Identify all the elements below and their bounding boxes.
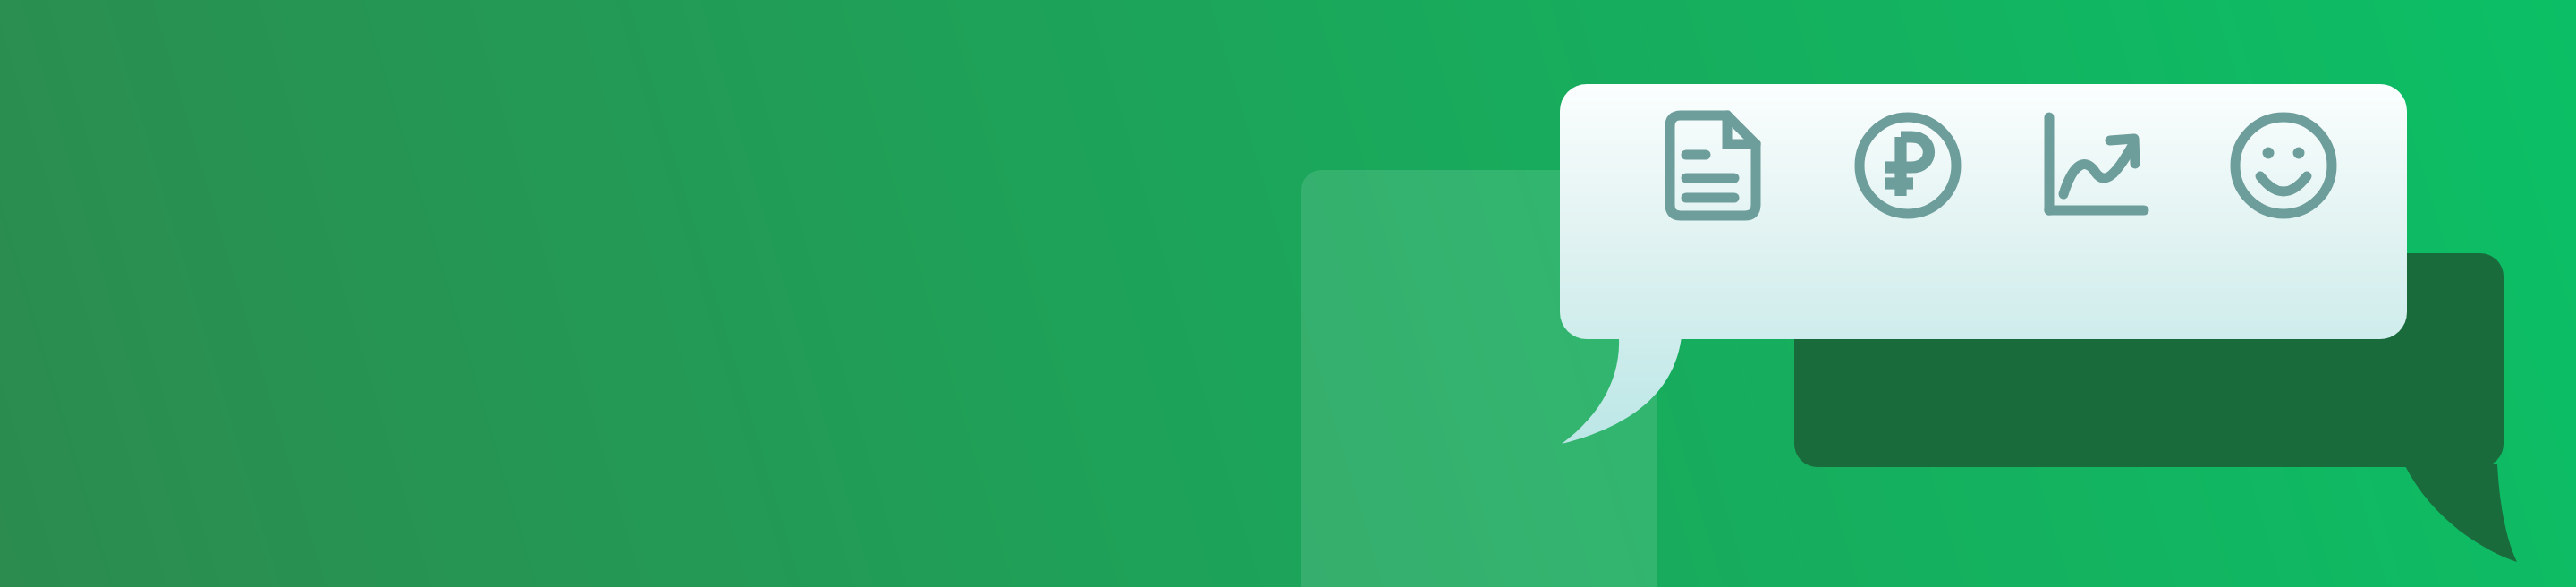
button[interactable]: Services banner	[0, 0, 2576, 587]
